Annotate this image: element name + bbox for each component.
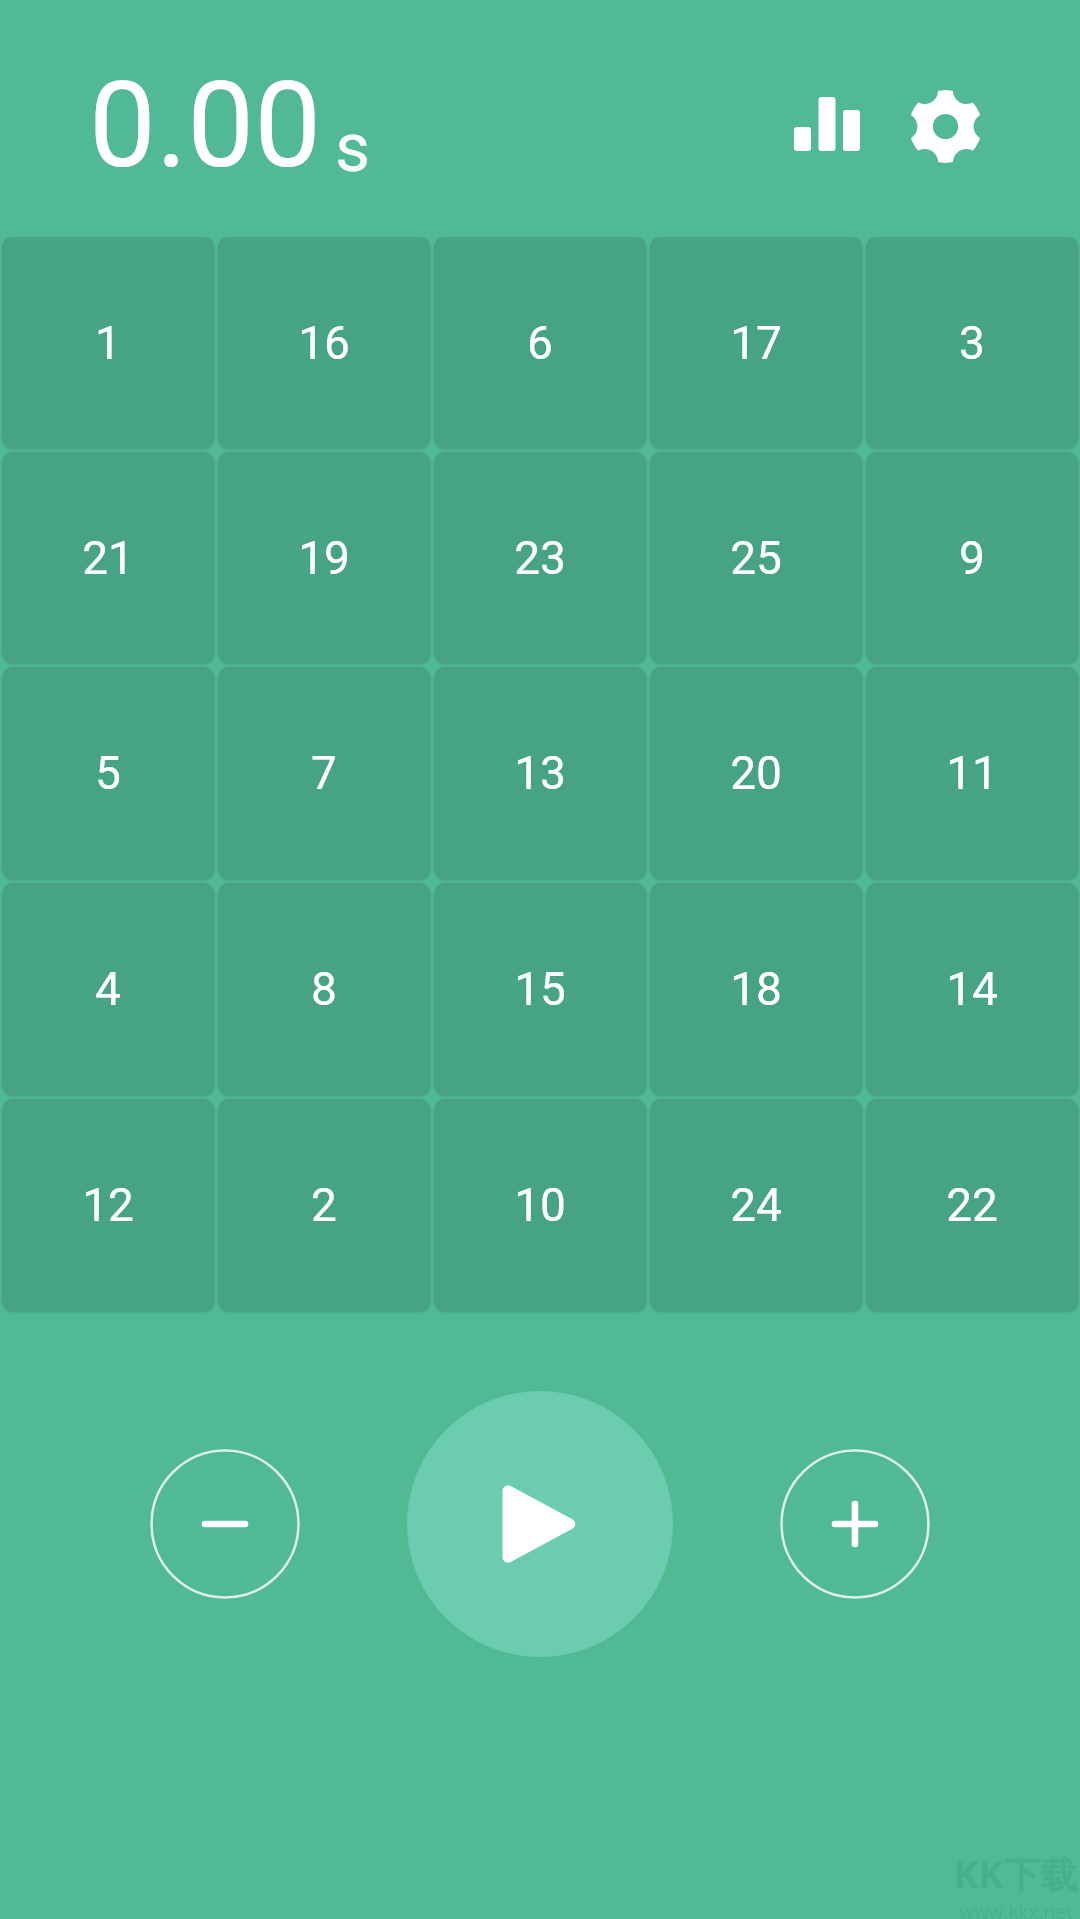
staticText: KK下载 [954, 1848, 1078, 1899]
button[interactable]: 1 [2, 237, 214, 448]
button[interactable]: 21 [2, 452, 214, 663]
staticText: 3 [959, 316, 985, 370]
button[interactable]: 25 [650, 452, 862, 663]
staticText: 21 [82, 531, 134, 585]
staticText: s [335, 108, 371, 188]
staticText: 25 [730, 531, 782, 585]
button[interactable]: 5 [2, 667, 214, 879]
button[interactable]: 13 [434, 667, 646, 879]
button[interactable]: Decrease [150, 1449, 300, 1599]
button[interactable]: 11 [866, 667, 1078, 879]
staticText: 22 [946, 1178, 998, 1232]
staticText: 16 [298, 316, 350, 370]
staticText: 9 [959, 531, 985, 585]
button[interactable]: Statistics [770, 67, 884, 181]
button[interactable]: 22 [866, 1099, 1078, 1311]
button[interactable]: 24 [650, 1099, 862, 1311]
staticText: 0.00 [89, 56, 322, 195]
staticText: 10 [514, 1178, 566, 1232]
button[interactable]: 16 [218, 237, 430, 448]
button[interactable]: 7 [218, 667, 430, 879]
button[interactable]: Start [407, 1391, 673, 1657]
button[interactable]: 18 [650, 883, 862, 1095]
button[interactable]: 10 [434, 1099, 646, 1311]
staticText: 11 [946, 746, 998, 800]
staticText: 2 [311, 1178, 337, 1232]
button[interactable]: 6 [434, 237, 646, 448]
staticText: 7 [311, 746, 337, 800]
button[interactable]: 23 [434, 452, 646, 663]
staticText: 4 [95, 962, 121, 1016]
staticText: 15 [514, 962, 566, 1016]
staticText: 14 [946, 962, 998, 1016]
staticText: 5 [95, 746, 121, 800]
staticText: 19 [298, 531, 350, 585]
staticText: 17 [730, 316, 782, 370]
button[interactable]: Settings [888, 69, 1002, 183]
button[interactable]: 9 [866, 452, 1078, 663]
button[interactable]: Increase [780, 1449, 930, 1599]
staticText: 6 [527, 316, 553, 370]
button[interactable]: 17 [650, 237, 862, 448]
staticText: 20 [730, 746, 782, 800]
staticText: 1 [95, 316, 121, 370]
staticText: 13 [514, 746, 566, 800]
staticText: 18 [730, 962, 782, 1016]
button[interactable]: 12 [2, 1099, 214, 1311]
button[interactable]: 3 [866, 237, 1078, 448]
button[interactable]: 8 [218, 883, 430, 1095]
button[interactable]: 19 [218, 452, 430, 663]
button[interactable]: 15 [434, 883, 646, 1095]
staticText: 8 [311, 962, 337, 1016]
staticText: 23 [514, 531, 566, 585]
button[interactable]: 20 [650, 667, 862, 879]
staticText: 24 [730, 1178, 782, 1232]
button[interactable]: 4 [2, 883, 214, 1095]
button[interactable]: 2 [218, 1099, 430, 1311]
staticText: 12 [82, 1178, 134, 1232]
button[interactable]: 14 [866, 883, 1078, 1095]
